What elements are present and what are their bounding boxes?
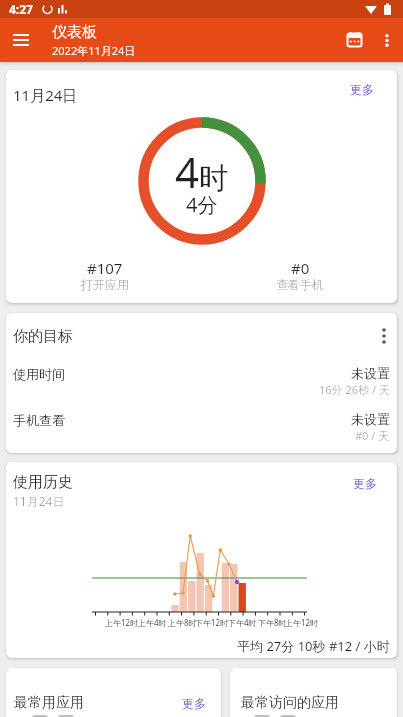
staticText: 16分 26秒 / 天 bbox=[319, 382, 390, 397]
staticText: 11月24日 bbox=[13, 85, 78, 105]
staticText: 平均 27分 10秒 #12 / 小时 bbox=[237, 637, 390, 655]
staticText: 上午12时 bbox=[105, 617, 139, 628]
button[interactable]: 更多 bbox=[182, 696, 206, 711]
staticText: 下午8时 bbox=[258, 617, 287, 628]
button[interactable]: 手机查看 bbox=[6, 409, 397, 451]
staticText: 打开应用 bbox=[81, 277, 129, 292]
staticText: 仪表板 bbox=[52, 23, 97, 42]
button[interactable]: 使用时间 bbox=[6, 363, 397, 405]
staticText: 上午12时 bbox=[285, 617, 319, 628]
staticText: 你的目标 bbox=[13, 327, 73, 346]
staticText: #107 bbox=[87, 258, 123, 278]
staticText: 最常用应用 bbox=[14, 694, 84, 712]
staticText: 最常访问的应用 bbox=[241, 694, 339, 712]
staticText: 11月24日 bbox=[13, 493, 65, 509]
staticText: 2022年11月24日 bbox=[52, 43, 136, 58]
staticText: 查看手机 bbox=[276, 277, 324, 292]
staticText: #0 bbox=[291, 258, 310, 278]
staticText: 下午4时 bbox=[228, 617, 257, 628]
staticText: 上午8时 bbox=[168, 617, 197, 628]
staticText: 4时 bbox=[175, 143, 229, 200]
button[interactable]: 更多 bbox=[353, 476, 377, 491]
staticText: 手机查看 bbox=[13, 412, 65, 428]
button[interactable] bbox=[374, 27, 400, 53]
button[interactable] bbox=[8, 27, 34, 53]
button[interactable]: 更多 bbox=[350, 82, 374, 97]
staticText: 未设置 bbox=[351, 411, 390, 427]
button[interactable] bbox=[373, 325, 395, 347]
staticText: 使用历史 bbox=[13, 473, 73, 492]
staticText: 上午4时 bbox=[138, 617, 167, 628]
staticText: #0 / 天 bbox=[355, 428, 390, 443]
staticText: 使用时间 bbox=[13, 366, 65, 382]
button[interactable] bbox=[341, 26, 367, 52]
staticText: 4分 bbox=[186, 191, 218, 218]
button[interactable]: 最常访问的应用 bbox=[230, 668, 397, 717]
button[interactable]: 最常用应用 bbox=[6, 668, 221, 717]
staticText: 未设置 bbox=[351, 365, 390, 381]
staticText: 4:27 bbox=[9, 1, 33, 17]
staticText: 下午12时 bbox=[195, 617, 229, 628]
